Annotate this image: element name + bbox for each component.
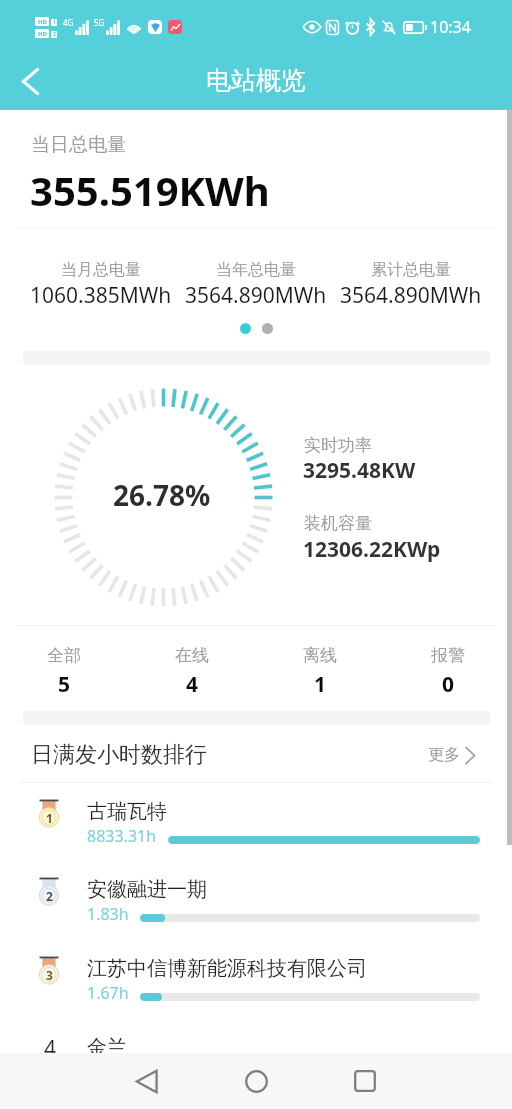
staticText: 12306.22KWp <box>303 535 441 564</box>
staticText: 当月总电量 <box>61 260 141 280</box>
staticText: 累计总电量 <box>371 260 451 280</box>
staticText: 更多 <box>428 745 460 765</box>
button[interactable]: 3 <box>0 950 512 1028</box>
staticText: 离线 <box>303 645 337 666</box>
staticText: 5G <box>94 17 105 28</box>
button[interactable]: 离线 <box>256 645 384 699</box>
staticText: 26.78% <box>113 476 211 514</box>
staticText: 3 <box>46 967 53 983</box>
staticText: 10:34 <box>430 16 471 38</box>
staticText: 金兰 <box>87 1035 127 1060</box>
staticText: 1.83h <box>87 903 129 925</box>
staticText: 1 <box>46 810 53 826</box>
button[interactable]: 报警 <box>384 645 512 699</box>
button[interactable]: Back <box>4 55 56 107</box>
staticText: 1060.385MWh <box>30 281 172 310</box>
button[interactable]: 日满发小时数排行 <box>0 728 512 782</box>
staticText: 1 <box>314 670 327 699</box>
staticText: HD <box>38 30 47 38</box>
staticText: 装机容量 <box>304 513 372 534</box>
staticText: 古瑞瓦特 <box>87 799 167 824</box>
staticText: 3295.48KW <box>303 456 416 485</box>
staticText: 日满发小时数排行 <box>31 741 207 769</box>
staticText: 8833.31h <box>87 825 157 847</box>
staticText: 0 <box>442 670 455 699</box>
staticText: 实时功率 <box>304 435 372 456</box>
staticText: 江苏中信博新能源科技有限公司 <box>87 956 367 981</box>
staticText: 3564.890MWh <box>340 281 482 310</box>
button[interactable]: Back <box>118 1053 174 1109</box>
staticText: 3564.890MWh <box>185 281 327 310</box>
staticText: 当年总电量 <box>216 260 296 280</box>
staticText: 电站概览 <box>206 65 306 96</box>
staticText: 安徽融进一期 <box>87 877 207 902</box>
staticText: 5 <box>58 670 71 699</box>
staticText: 4 <box>186 670 199 699</box>
button[interactable]: 1 <box>0 793 512 871</box>
staticText: 全部 <box>47 645 81 666</box>
button[interactable]: 2 <box>0 871 512 949</box>
button[interactable]: Recent apps <box>337 1053 393 1109</box>
staticText: 在线 <box>175 645 209 666</box>
staticText: 1.67h <box>87 982 129 1004</box>
staticText: 1 <box>53 19 56 26</box>
staticText: HD <box>38 18 47 26</box>
staticText: 4G <box>63 17 74 28</box>
button[interactable]: 4 <box>0 1029 512 1107</box>
staticText: 4 <box>44 1034 57 1062</box>
staticText: 当日总电量 <box>31 133 126 157</box>
staticText: 报警 <box>431 645 465 666</box>
button[interactable]: Home <box>228 1053 284 1109</box>
staticText: 355.519KWh <box>30 163 270 217</box>
button[interactable]: 全部 <box>0 645 128 699</box>
button[interactable]: 在线 <box>128 645 256 699</box>
staticText: 2 <box>46 888 53 904</box>
staticText: 2 <box>53 31 56 38</box>
